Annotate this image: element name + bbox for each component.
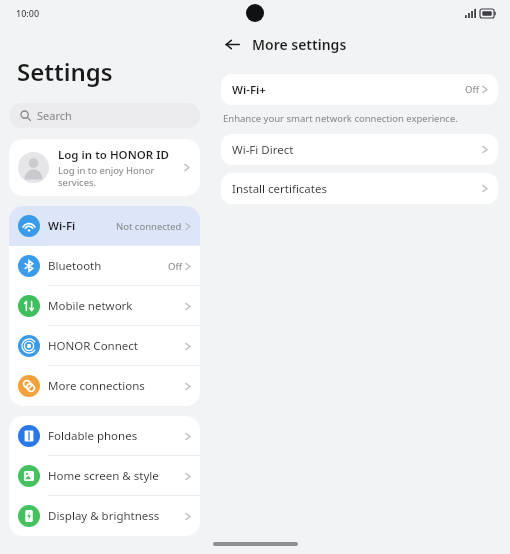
button[interactable]: Back: [221, 33, 243, 55]
staticText: Wi-Fi Direct: [232, 142, 482, 158]
staticText: Settings: [17, 55, 113, 88]
staticText: More settings: [252, 35, 347, 54]
staticText: Home screen & style: [48, 468, 185, 484]
staticText: Enhance your smart network connection ex…: [223, 112, 458, 125]
staticText: Wi-Fi+: [232, 82, 465, 98]
staticText: Not connected: [116, 220, 182, 233]
staticText: Off: [465, 83, 479, 96]
button[interactable]: Install certificates: [221, 173, 498, 204]
button[interactable]: HONOR Connect: [9, 326, 200, 366]
button[interactable]: Wi-Fi: [9, 206, 200, 246]
staticText: Off: [168, 260, 182, 273]
staticText: Bluetooth: [48, 258, 168, 274]
button[interactable]: Wi-Fi Direct: [221, 134, 498, 165]
button[interactable]: Wi-Fi+: [221, 74, 498, 105]
staticText: 10:00: [16, 7, 40, 19]
staticText: Search: [37, 108, 72, 123]
staticText: Log in to enjoy Honor services.: [58, 164, 184, 189]
staticText: Install certificates: [232, 181, 482, 197]
button[interactable]: Search: [9, 103, 200, 128]
button[interactable]: Foldable phones: [9, 416, 200, 456]
staticText: HONOR Connect: [48, 338, 185, 354]
staticText: More connections: [48, 378, 185, 394]
button[interactable]: More connections: [9, 366, 200, 406]
button[interactable]: Bluetooth: [9, 246, 200, 286]
button[interactable]: Display & brightness: [9, 496, 200, 536]
staticText: Wi-Fi: [48, 218, 116, 234]
staticText: Mobile network: [48, 298, 185, 314]
staticText: Display & brightness: [48, 508, 185, 524]
staticText: Foldable phones: [48, 428, 185, 444]
staticText: Log in to HONOR ID: [58, 147, 169, 163]
button[interactable]: Home screen & style: [9, 456, 200, 496]
button[interactable]: Log in to HONOR ID: [9, 139, 200, 196]
button[interactable]: Mobile network: [9, 286, 200, 326]
